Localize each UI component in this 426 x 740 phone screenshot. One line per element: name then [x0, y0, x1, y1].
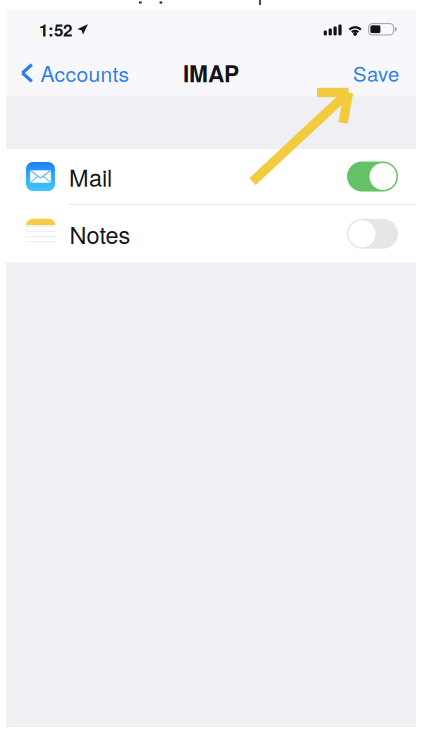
button[interactable]: Save: [337, 51, 416, 95]
staticText: Save: [353, 58, 399, 87]
staticText: IMAP: [183, 57, 239, 89]
staticText: 1:52: [39, 17, 72, 42]
button[interactable]: Accounts: [6, 51, 141, 95]
button[interactable]: Notes: [6, 205, 416, 262]
staticText: Accounts: [40, 58, 129, 88]
button[interactable]: Mail: [6, 149, 416, 204]
staticText: Notes: [69, 217, 130, 250]
staticText: Mail: [69, 160, 112, 193]
